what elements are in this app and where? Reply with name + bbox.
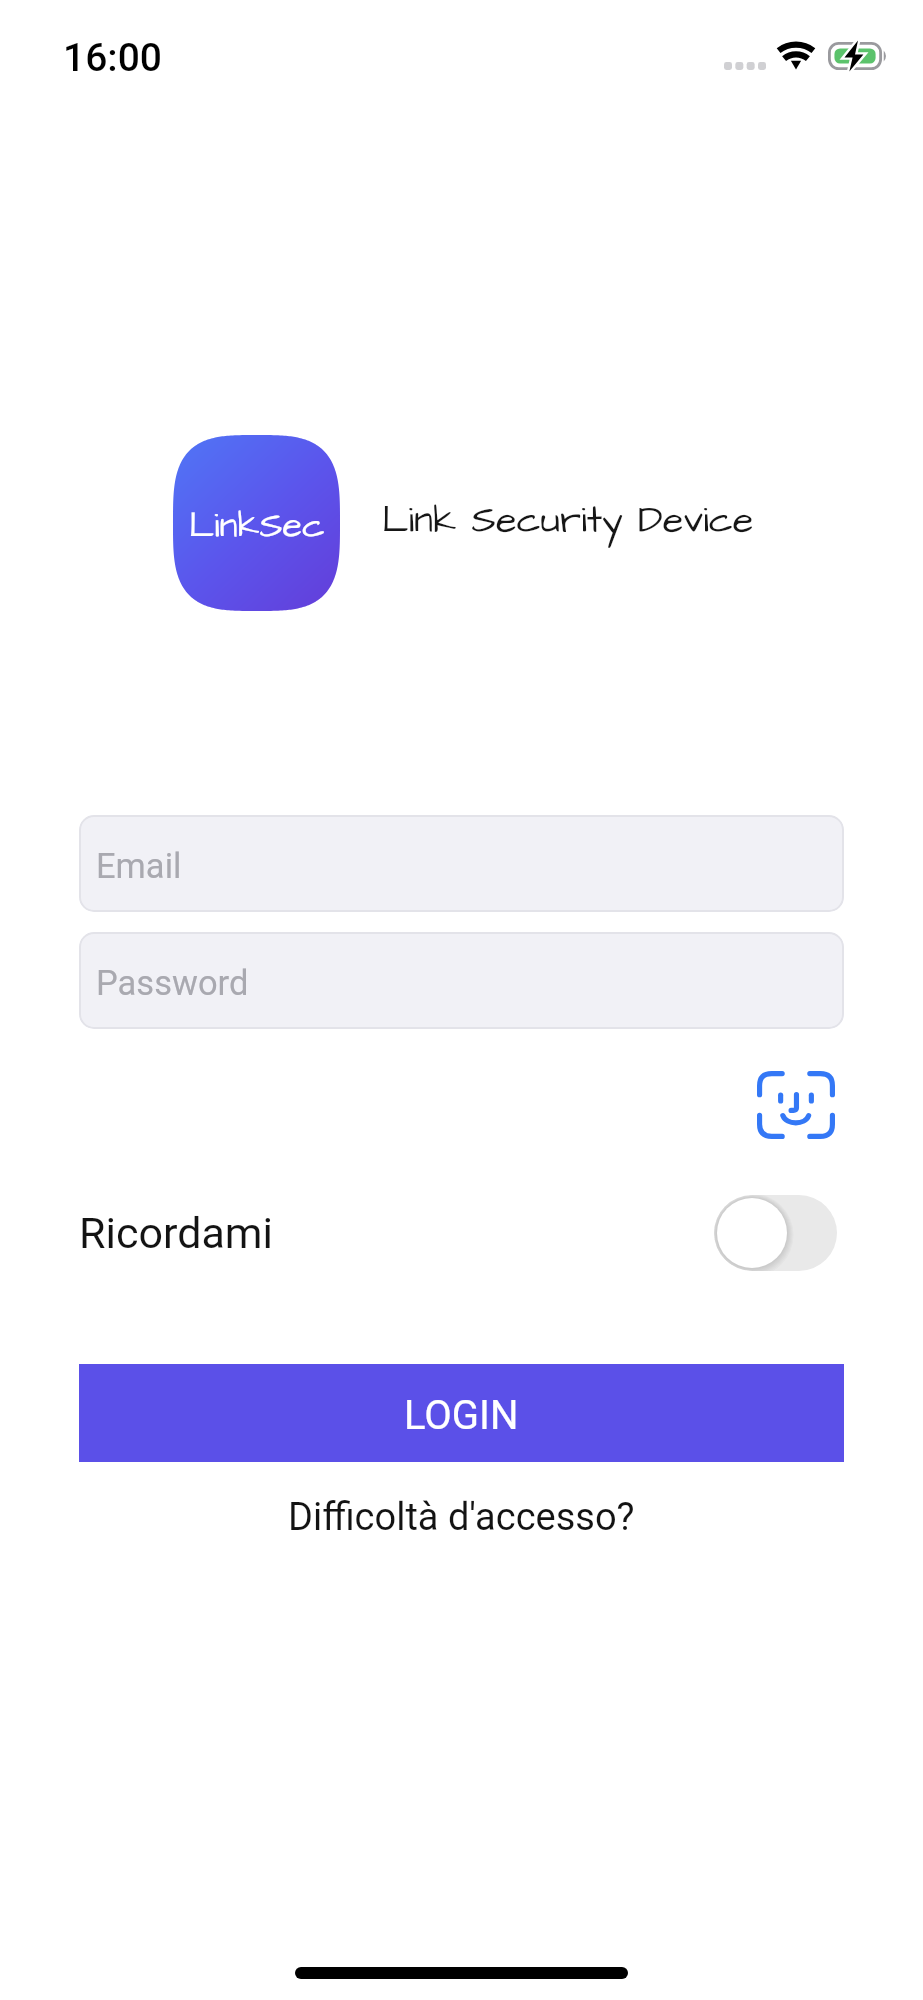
button[interactable]: Email [79,815,844,912]
button[interactable]: Ricordami toggle, off [714,1195,837,1271]
button[interactable]: Password [79,932,844,1029]
staticText: Email [96,846,182,886]
staticText: LOGIN [404,1392,519,1439]
staticText: LinkSec [189,500,325,550]
staticText: Link Security Device [382,495,754,548]
staticText: Ricordami [79,1208,273,1258]
staticText: Difficoltà d'accesso? [288,1495,635,1540]
staticText: Password [96,963,249,1003]
button[interactable]: Difficoltà d'accesso? [79,1486,844,1548]
staticText: 16:00 [63,35,163,81]
button[interactable]: Ricordami [79,1195,273,1271]
button[interactable]: Face ID login [747,1060,845,1150]
button[interactable]: LOGIN [79,1364,844,1462]
